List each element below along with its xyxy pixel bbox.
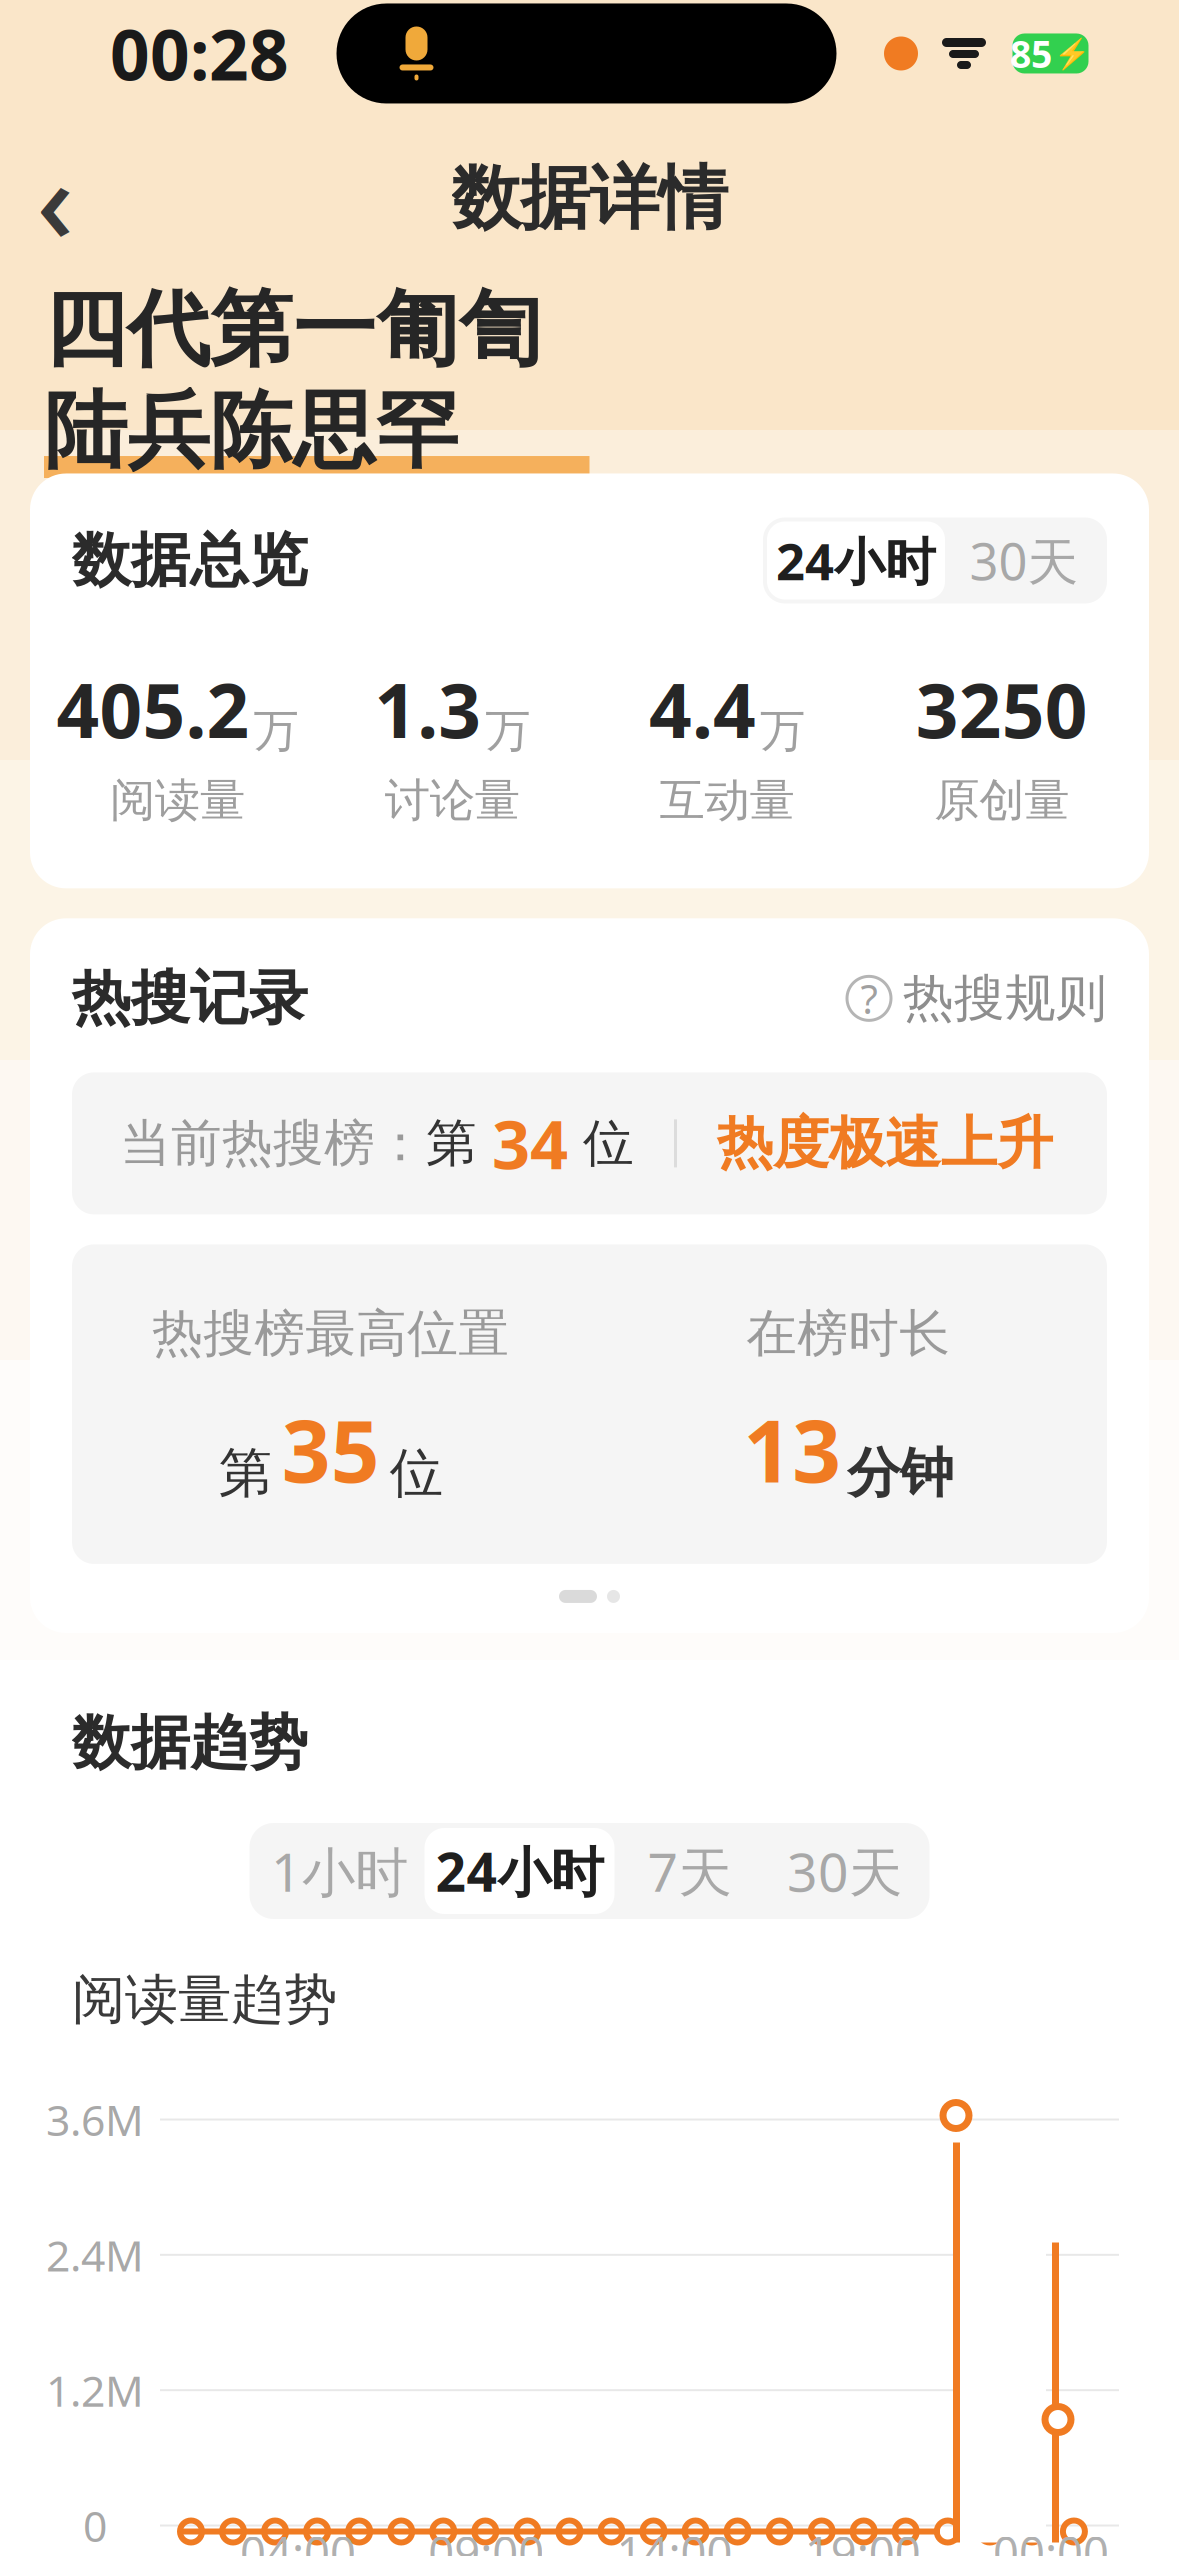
staticText: 阅读量 (110, 773, 245, 828)
staticText: 数据趋势 (72, 1707, 308, 1779)
staticText: 热搜记录 (72, 962, 308, 1034)
staticText: 24小时 (776, 527, 936, 594)
staticText: 00:00 (993, 2522, 1109, 2556)
staticText: 位 (390, 1440, 443, 1506)
staticText: 405.2 (56, 659, 249, 759)
staticText: 0 (83, 2497, 107, 2554)
staticText: 19:00 (805, 2522, 921, 2556)
staticText: 第 (219, 1440, 272, 1506)
staticText: 09:00 (428, 2522, 544, 2556)
button[interactable]: 1小时 (254, 1828, 424, 1914)
staticText: 数据总览 (72, 524, 308, 597)
staticText: 四代第一匍訇陆兵陈思罕 (44, 279, 542, 482)
staticText: ⚡ (1054, 37, 1091, 70)
staticText: 热搜榜最高位置 (152, 1302, 509, 1365)
staticText: 当前热搜榜： (120, 1112, 426, 1174)
button[interactable]: ? (847, 967, 1107, 1029)
staticText: 24小时 (435, 1836, 603, 1906)
staticText: 1.2M (46, 2362, 144, 2418)
staticText: 讨论量 (385, 773, 520, 828)
staticText: 14:00 (616, 2522, 732, 2556)
staticText: 30天 (969, 527, 1078, 594)
button[interactable]: 30天 (764, 1828, 924, 1914)
staticText: 34 (492, 1099, 568, 1188)
staticText: 万 (253, 703, 298, 759)
staticText: 13 (743, 1393, 841, 1506)
staticText: 分钟 (847, 1440, 953, 1506)
staticText: ? (860, 972, 877, 1025)
button[interactable]: 24小时 (424, 1828, 614, 1914)
staticText: 35 (282, 1393, 380, 1506)
staticText: 阅读量趋势 (72, 1967, 337, 2032)
staticText: 00:28 (110, 7, 289, 100)
button[interactable]: 24小时 (767, 521, 945, 599)
staticText: ‹ (36, 122, 73, 275)
staticText: 位 (568, 1112, 634, 1174)
staticText: 万 (485, 703, 530, 759)
staticText: 第 (426, 1112, 492, 1174)
staticText: 1小时 (271, 1836, 408, 1906)
staticText: 热度极速上升 (717, 1109, 1053, 1178)
staticText: 数据详情 (451, 156, 727, 241)
staticText: 互动量 (659, 773, 794, 828)
staticText: 7天 (647, 1836, 731, 1906)
staticText: 4.4 (649, 659, 756, 759)
staticText: 3250 (916, 659, 1088, 759)
button[interactable]: 7天 (614, 1828, 764, 1914)
staticText: 3.6M (46, 2091, 144, 2148)
staticText: 万 (760, 703, 805, 759)
staticText: 04:00 (240, 2522, 356, 2556)
staticText: 在榜时长 (746, 1302, 950, 1365)
staticText: 85 (1010, 29, 1052, 78)
staticText: 原创量 (934, 773, 1069, 828)
staticText: 热搜规则 (903, 967, 1107, 1029)
staticText: 2.4M (46, 2226, 144, 2283)
button[interactable]: Back (0, 143, 110, 253)
button[interactable]: 30天 (945, 521, 1103, 599)
staticText: 1.3 (374, 659, 481, 759)
staticText: 30天 (787, 1836, 902, 1906)
